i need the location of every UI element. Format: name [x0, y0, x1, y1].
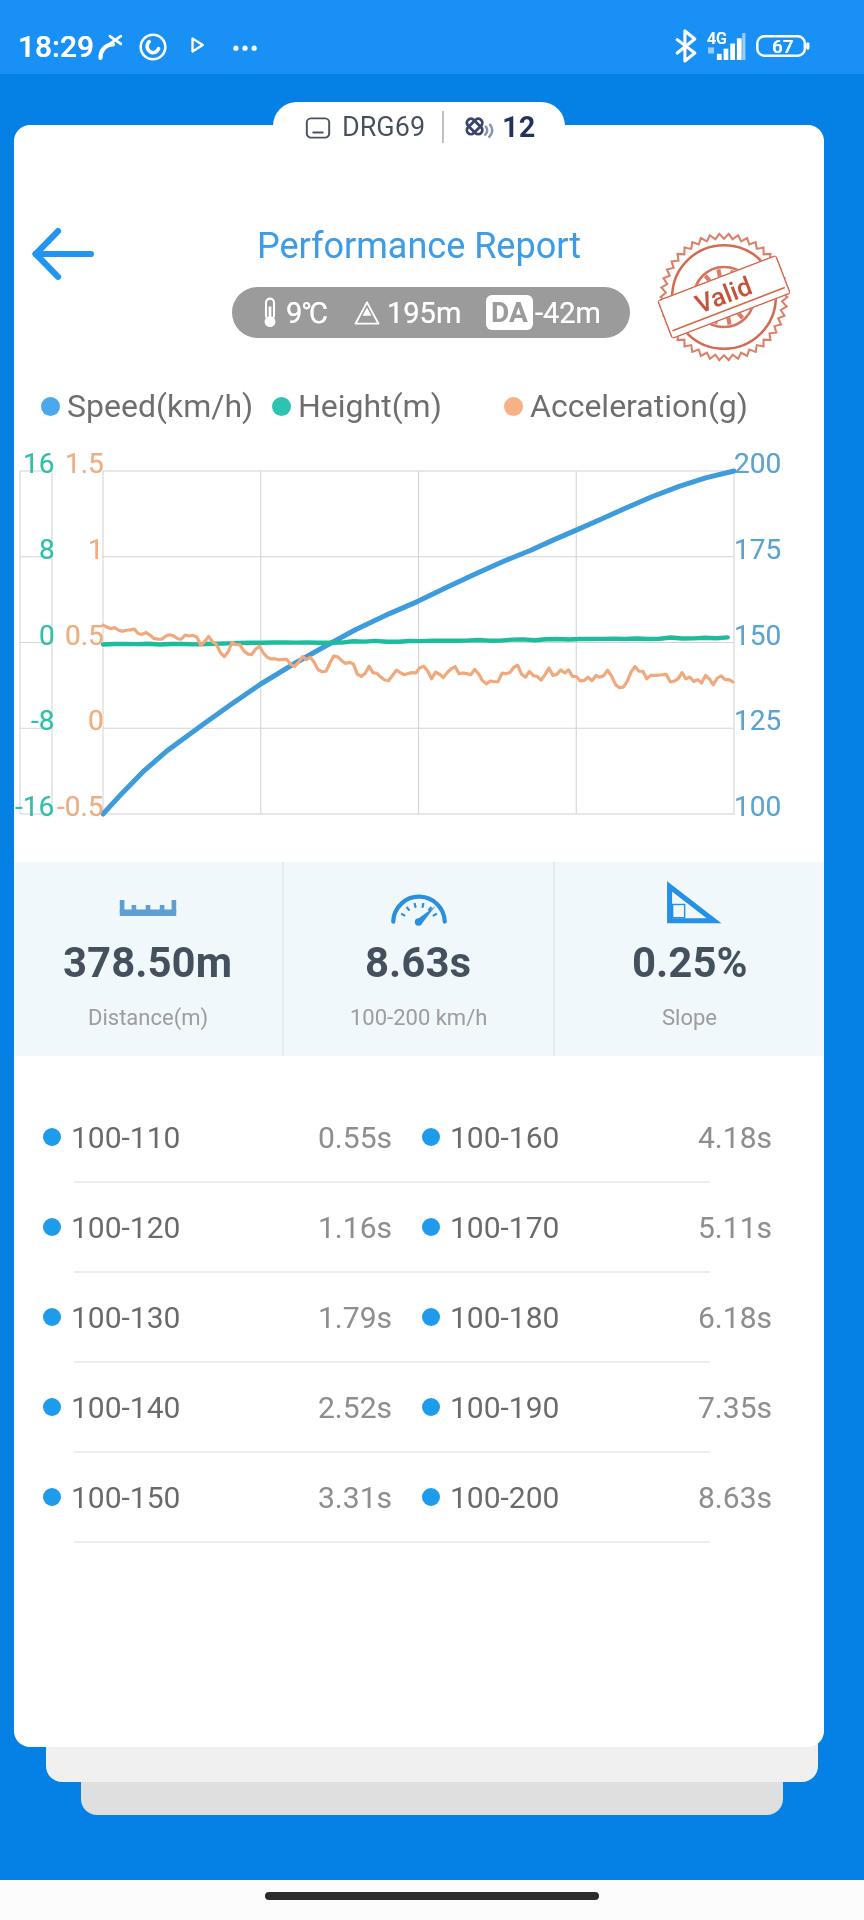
button[interactable]: 100-190 [419, 1363, 824, 1451]
staticText: 100-180 [450, 1300, 560, 1335]
button[interactable]: 100-120 [14, 1183, 419, 1271]
staticText: 175 [734, 533, 782, 566]
staticText: 1.79s [318, 1300, 392, 1335]
staticText: 100-200 [450, 1480, 560, 1515]
staticText: 6.18s [698, 1300, 772, 1335]
button[interactable]: DRG69 [273, 102, 565, 151]
staticText: 100 [734, 790, 782, 823]
staticText: -8 [31, 704, 55, 737]
staticText: 1.5 [65, 447, 104, 480]
staticText: 0.55s [318, 1120, 392, 1155]
staticText: 100-160 [450, 1120, 560, 1155]
button[interactable]: 8.63s [284, 862, 553, 1056]
button[interactable]: 100-200 [419, 1453, 824, 1541]
staticText: 0 [88, 704, 104, 737]
staticText: 8.63s [698, 1480, 772, 1515]
button[interactable]: 100-180 [419, 1273, 824, 1361]
staticText: Distance(m) [88, 1005, 209, 1031]
staticText: 0.25% [632, 938, 748, 987]
staticText: 195m [387, 296, 462, 330]
staticText: 100-140 [71, 1390, 181, 1425]
button[interactable]: Back [26, 217, 100, 291]
staticText: 125 [734, 704, 782, 737]
staticText: 1 [88, 533, 104, 566]
staticText: 7.35s [698, 1390, 772, 1425]
staticText: Height(m) [298, 387, 442, 425]
staticText: 8 [39, 533, 55, 566]
staticText: 378.50m [63, 938, 233, 987]
staticText: 0 [39, 619, 55, 652]
staticText: 9℃ [286, 296, 328, 330]
staticText: Acceleration(g) [530, 387, 748, 425]
button[interactable]: 100-110 [14, 1093, 419, 1181]
button[interactable]: 100-130 [14, 1273, 419, 1361]
staticText: 100-200 km/h [350, 1005, 488, 1031]
staticText: 8.63s [365, 938, 472, 987]
staticText: 100-110 [71, 1120, 181, 1155]
staticText: 1.16s [318, 1210, 392, 1245]
staticText: -42m [535, 296, 602, 330]
staticText: 100-130 [71, 1300, 181, 1335]
staticText: 18:29 [18, 29, 95, 64]
staticText: 3.31s [318, 1480, 392, 1515]
staticText: 100-120 [71, 1210, 181, 1245]
staticText: 200 [734, 447, 782, 480]
button[interactable]: 100-170 [419, 1183, 824, 1271]
staticText: Slope [662, 1005, 717, 1031]
staticText: 4.18s [698, 1120, 772, 1155]
staticText: DA [491, 296, 528, 329]
staticText: Valid [691, 270, 757, 320]
staticText: 12 [502, 110, 536, 144]
staticText: 4G [707, 29, 727, 48]
button[interactable]: 0.25% [555, 862, 824, 1056]
staticText: Speed(km/h) [67, 387, 254, 425]
staticText: 150 [734, 619, 782, 652]
staticText: 100-190 [450, 1390, 560, 1425]
staticText: 100-150 [71, 1480, 181, 1515]
button[interactable]: 100-140 [14, 1363, 419, 1451]
staticText: 67 [772, 35, 794, 57]
button[interactable]: 100-160 [419, 1093, 824, 1181]
staticText: 16 [23, 447, 55, 480]
staticText: -0.5 [57, 790, 104, 823]
staticText: Performance Report [257, 225, 582, 267]
button[interactable]: 100-150 [14, 1453, 419, 1541]
staticText: 0.5 [65, 619, 104, 652]
staticText: 5.11s [698, 1210, 772, 1245]
button[interactable]: 378.50m [14, 862, 282, 1056]
staticText: DRG69 [342, 111, 426, 143]
staticText: 100-170 [450, 1210, 560, 1245]
staticText: 2.52s [318, 1390, 392, 1425]
staticText: -16 [15, 790, 55, 823]
